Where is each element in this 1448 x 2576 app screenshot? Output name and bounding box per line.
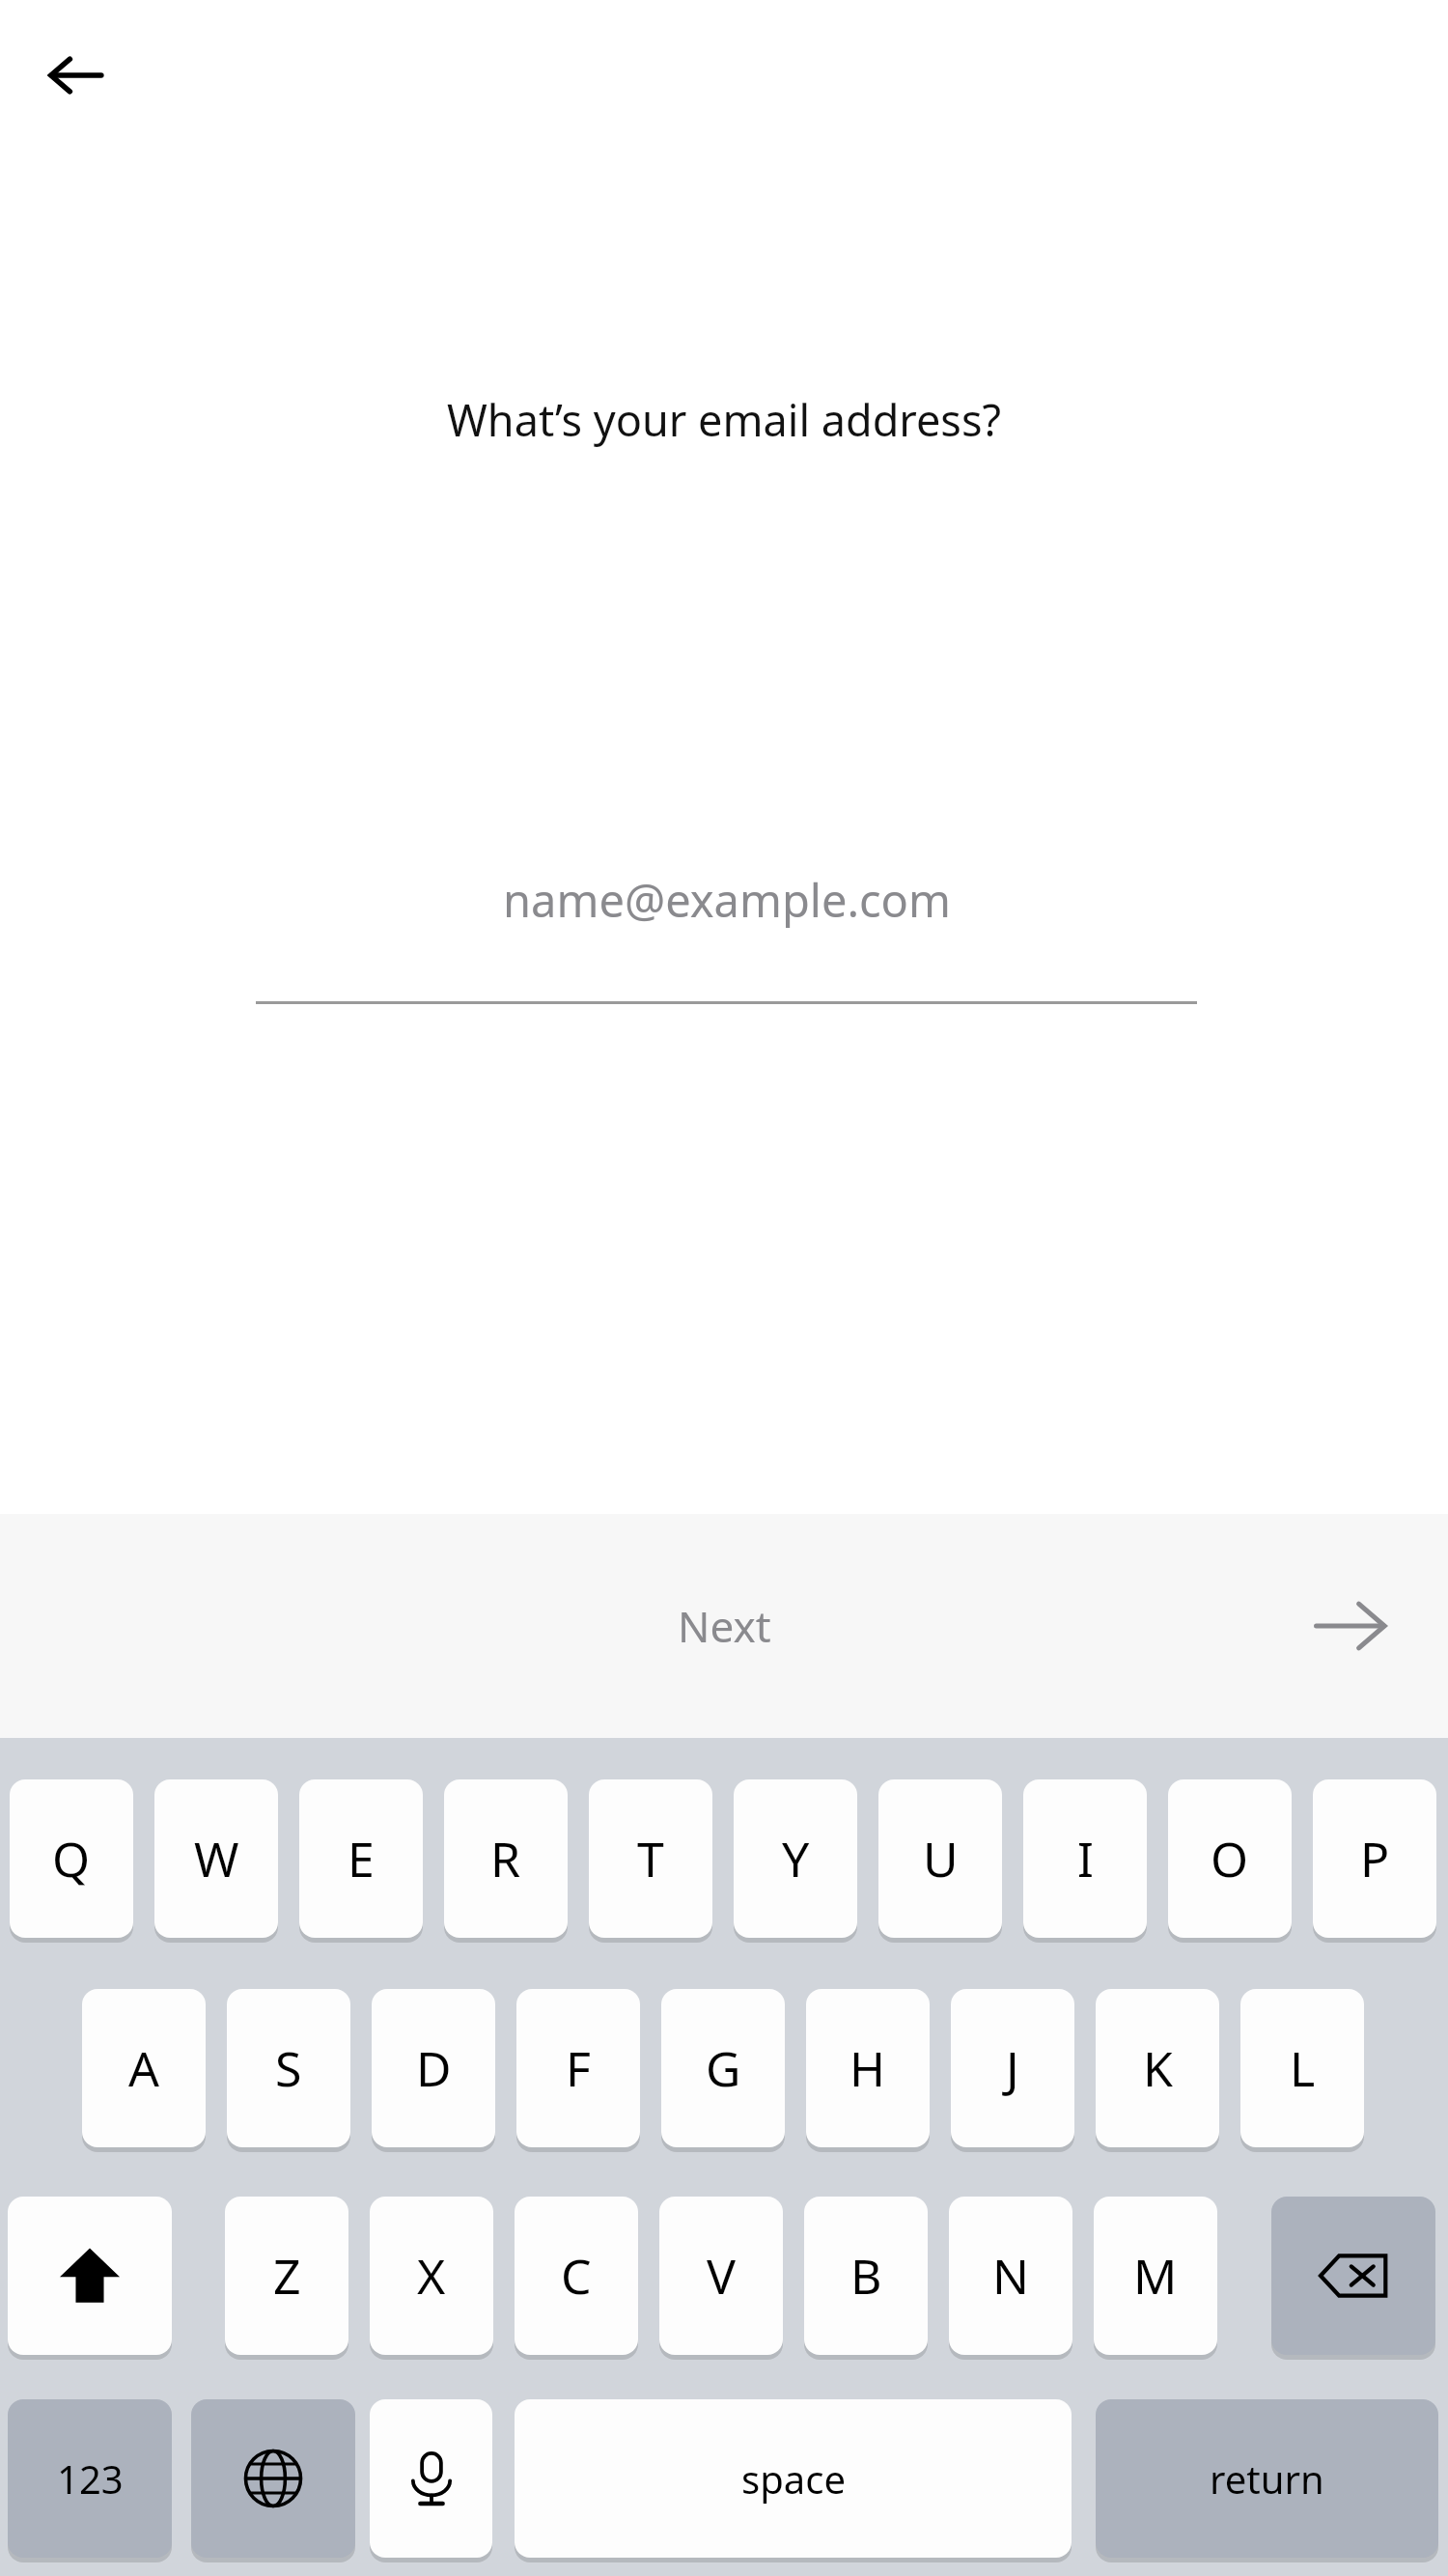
button[interactable]: T — [589, 1779, 712, 1938]
button[interactable]: Dictate — [370, 2399, 492, 2558]
button[interactable]: H — [806, 1989, 930, 2147]
button[interactable]: Back — [29, 29, 122, 122]
button[interactable]: Shift — [8, 2197, 172, 2355]
staticText: V — [707, 2243, 736, 2309]
button[interactable]: P — [1313, 1779, 1436, 1938]
staticText: L — [1290, 2035, 1316, 2101]
button[interactable]: Next — [0, 1514, 1448, 1738]
button[interactable]: G — [661, 1989, 785, 2147]
staticText: B — [850, 2243, 882, 2309]
staticText: 123 — [57, 2452, 124, 2505]
staticText: Y — [782, 1826, 810, 1891]
staticText: I — [1077, 1826, 1094, 1891]
staticText: D — [416, 2035, 452, 2101]
button[interactable]: N — [949, 2197, 1072, 2355]
button[interactable]: name@example.com — [256, 869, 1197, 1014]
staticText: name@example.com — [503, 869, 951, 931]
button[interactable]: Y — [734, 1779, 857, 1938]
button[interactable]: C — [515, 2197, 638, 2355]
staticText: K — [1143, 2035, 1173, 2101]
staticText: E — [348, 1826, 375, 1891]
staticText: P — [1360, 1826, 1390, 1891]
button[interactable]: I — [1023, 1779, 1147, 1938]
staticText: T — [637, 1826, 664, 1891]
staticText: N — [992, 2243, 1029, 2309]
button[interactable]: O — [1168, 1779, 1292, 1938]
button[interactable]: D — [372, 1989, 495, 2147]
other: Next — [1308, 1582, 1395, 1669]
staticText: S — [275, 2035, 302, 2101]
button[interactable]: F — [516, 1989, 640, 2147]
staticText: Z — [273, 2243, 301, 2309]
staticText: C — [561, 2243, 592, 2309]
staticText: A — [128, 2035, 159, 2101]
button[interactable]: A — [82, 1989, 206, 2147]
staticText: H — [849, 2035, 886, 2101]
button[interactable]: X — [370, 2197, 493, 2355]
button[interactable]: E — [299, 1779, 423, 1938]
staticText: Q — [52, 1826, 91, 1891]
button[interactable]: J — [951, 1989, 1074, 2147]
staticText: G — [706, 2035, 741, 2101]
button[interactable]: space — [515, 2399, 1072, 2558]
button[interactable]: Q — [10, 1779, 133, 1938]
staticText: return — [1210, 2452, 1324, 2505]
button[interactable]: L — [1240, 1989, 1364, 2147]
button[interactable]: Z — [225, 2197, 348, 2355]
staticText: F — [566, 2035, 591, 2101]
staticText: Next — [678, 1597, 771, 1655]
staticText: X — [417, 2243, 446, 2309]
button[interactable]: Change keyboard — [191, 2399, 355, 2558]
staticText: W — [194, 1826, 239, 1891]
staticText: What’s your email address? — [0, 390, 1448, 449]
button[interactable]: K — [1096, 1989, 1219, 2147]
staticText: M — [1133, 2243, 1178, 2309]
button[interactable]: U — [878, 1779, 1002, 1938]
button[interactable]: S — [227, 1989, 350, 2147]
staticText: R — [490, 1826, 521, 1891]
staticText: O — [1211, 1826, 1249, 1891]
button[interactable]: V — [659, 2197, 783, 2355]
staticText: J — [1006, 2035, 1019, 2101]
button[interactable]: B — [804, 2197, 928, 2355]
staticText: U — [923, 1826, 959, 1891]
button[interactable]: 123 — [8, 2399, 172, 2558]
button[interactable]: return — [1096, 2399, 1438, 2558]
button[interactable]: Backspace — [1271, 2197, 1435, 2355]
staticText: space — [741, 2452, 846, 2505]
button[interactable]: M — [1094, 2197, 1217, 2355]
button[interactable]: W — [154, 1779, 278, 1938]
button[interactable]: R — [444, 1779, 568, 1938]
